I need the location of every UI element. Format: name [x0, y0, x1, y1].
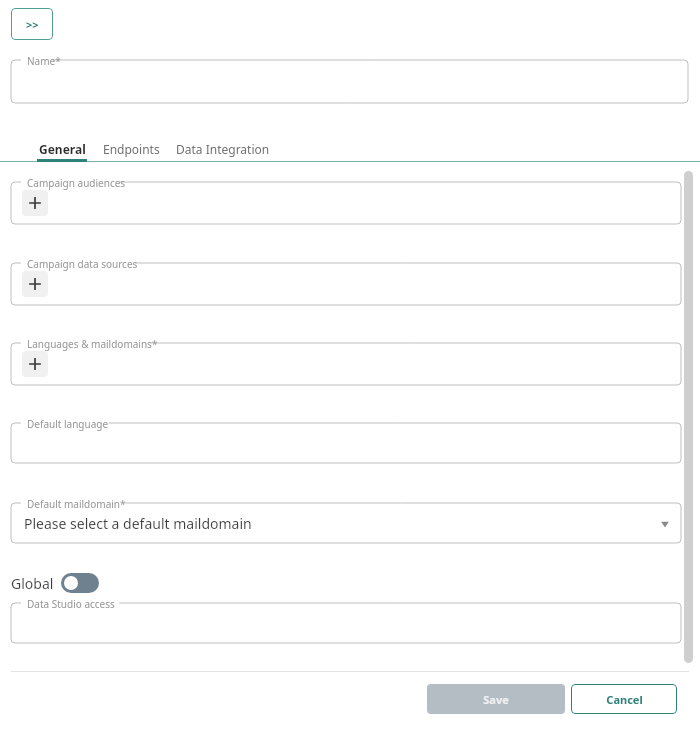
button[interactable]: Endpoints [101, 138, 162, 160]
staticText: Cancel [606, 692, 643, 707]
button[interactable]: Cancel [571, 684, 677, 714]
staticText: Global [11, 574, 54, 593]
staticText: Name* [27, 54, 61, 68]
staticText: General [39, 141, 86, 157]
staticText: Data Studio access [27, 597, 115, 611]
button[interactable]: Add [22, 351, 48, 377]
staticText: >> [26, 17, 39, 32]
button[interactable]: Save [427, 684, 565, 714]
button[interactable]: Add [22, 271, 48, 297]
staticText: Default language [27, 417, 109, 431]
button[interactable]: Global [11, 573, 99, 593]
button[interactable]: Expand [11, 8, 53, 40]
staticText: Languages & maildomains* [27, 337, 158, 351]
staticText: Default maildomain* [27, 497, 126, 511]
staticText: Campaign audiences [27, 176, 126, 190]
staticText: Campaign data sources [27, 257, 138, 271]
button[interactable]: Please select a default maildomain [11, 497, 682, 544]
button[interactable]: Add [22, 190, 48, 216]
staticText: Data Integration [176, 141, 270, 157]
staticText: Save [483, 692, 509, 707]
button[interactable]: General [37, 138, 88, 160]
staticText: Please select a default maildomain [24, 514, 252, 533]
staticText: Endpoints [103, 141, 160, 157]
button[interactable]: Data Integration [174, 138, 272, 160]
